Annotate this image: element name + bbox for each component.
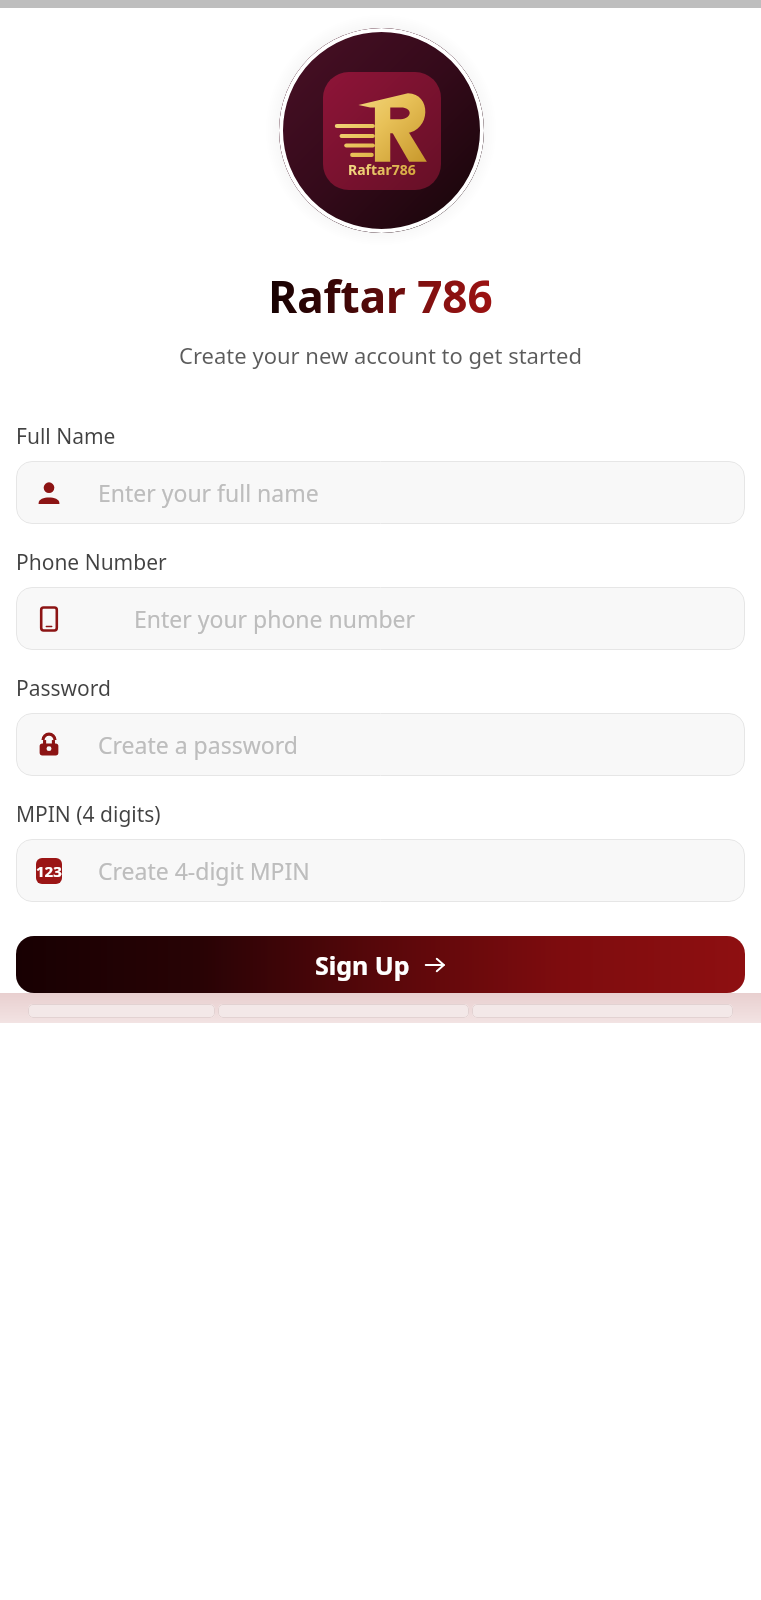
button[interactable]: Full name xyxy=(16,461,745,524)
other: Password xyxy=(36,732,62,758)
button[interactable]: Password xyxy=(16,713,745,776)
staticText: Create 4-digit MPIN xyxy=(98,855,310,886)
staticText: Enter your phone number xyxy=(134,603,416,634)
staticText: Password xyxy=(16,674,111,703)
other: Full name xyxy=(36,480,62,506)
button[interactable] xyxy=(218,1004,469,1018)
staticText: Raftar786 xyxy=(348,160,416,179)
staticText: Create a password xyxy=(98,729,298,760)
staticText: MPIN (4 digits) xyxy=(16,800,161,829)
button[interactable]: Sign Up xyxy=(16,936,745,993)
staticText: Full Name xyxy=(16,422,116,451)
button[interactable]: Phone number xyxy=(16,587,745,650)
staticText: Phone Number xyxy=(16,548,167,577)
other: Phone number xyxy=(36,606,62,632)
button[interactable] xyxy=(28,1004,215,1018)
staticText: Sign Up xyxy=(315,948,410,982)
staticText: Enter your full name xyxy=(98,477,319,508)
button[interactable]: MPIN xyxy=(16,839,745,902)
staticText: Raftar 786 xyxy=(268,266,493,326)
button[interactable] xyxy=(472,1004,733,1018)
staticText: Create your new account to get started xyxy=(179,340,582,370)
staticText: 123 xyxy=(36,861,62,881)
other: MPIN xyxy=(36,858,62,884)
